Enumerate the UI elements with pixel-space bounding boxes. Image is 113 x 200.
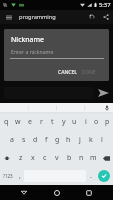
staticText: q [4, 117, 9, 127]
staticText: programming [19, 13, 56, 21]
staticText: l [101, 135, 103, 145]
button[interactable]: ?123 [0, 167, 15, 185]
button[interactable]: y [58, 113, 69, 131]
staticText: . [90, 171, 92, 181]
button[interactable]: v [51, 149, 63, 167]
button[interactable]: Share [98, 10, 113, 24]
staticText: CANCEL [58, 69, 77, 76]
button[interactable]: e [24, 113, 36, 131]
button[interactable]: Shift [0, 149, 14, 167]
button[interactable]: Home [48, 185, 66, 200]
button[interactable]: o [91, 113, 102, 131]
button[interactable]: DONE [81, 66, 100, 79]
staticText: o [94, 117, 99, 127]
button[interactable]: Back [15, 185, 33, 200]
staticText: e [28, 117, 32, 127]
button[interactable]: a [6, 131, 18, 149]
staticText: t [51, 117, 54, 127]
button[interactable]: Open navigation menu [0, 10, 17, 24]
staticText: f [45, 135, 48, 145]
button[interactable]: z [14, 149, 27, 167]
staticText: n [79, 153, 84, 163]
staticText: w [15, 117, 21, 127]
staticText: y [62, 117, 66, 127]
button[interactable]: t [47, 113, 58, 131]
button[interactable]: k [85, 131, 96, 149]
button[interactable]: r [36, 113, 47, 131]
staticText: , [19, 171, 21, 181]
button[interactable]: Recent apps [80, 185, 98, 200]
staticText: v [55, 153, 59, 163]
staticText: k [89, 135, 93, 145]
button[interactable]: f [41, 131, 52, 149]
button[interactable]: j [74, 131, 85, 149]
button[interactable]: Backspace [99, 149, 113, 167]
button[interactable]: l [96, 131, 107, 149]
button[interactable]: c [39, 149, 51, 167]
staticText: u [72, 117, 77, 127]
staticText: ?123 [3, 173, 13, 179]
button[interactable]: q [0, 113, 12, 131]
button[interactable]: , [15, 167, 24, 185]
staticText: a [10, 135, 14, 145]
staticText: g [55, 135, 60, 145]
button[interactable]: . [86, 167, 95, 185]
staticText: j [79, 135, 81, 145]
staticText: z [19, 153, 23, 163]
staticText: r [40, 117, 43, 127]
button[interactable]: i [80, 113, 91, 131]
button[interactable]: Voice input [101, 103, 113, 113]
staticText: m [90, 153, 97, 163]
staticText: d [33, 135, 38, 145]
button[interactable]: m [87, 149, 99, 167]
button[interactable]: Send [93, 85, 113, 101]
button[interactable]: s [18, 131, 30, 149]
button[interactable]: b [63, 149, 75, 167]
button[interactable]: w [12, 113, 24, 131]
button[interactable]: Refresh [85, 10, 98, 24]
staticText: i [85, 117, 87, 127]
staticText: Enter a nickname [11, 48, 54, 55]
staticText: h [66, 135, 71, 145]
staticText: x [31, 153, 35, 163]
staticText: c [43, 153, 47, 163]
button[interactable]: Enter [98, 170, 110, 182]
button[interactable]: n [75, 149, 87, 167]
staticText: DONE [82, 69, 96, 76]
button[interactable]: h [63, 131, 74, 149]
staticText: p [105, 117, 110, 127]
button[interactable]: CANCEL [54, 66, 81, 79]
button[interactable]: x [27, 149, 39, 167]
staticText: % [3, 2, 8, 9]
button[interactable]: d [30, 131, 41, 149]
button[interactable]: p [102, 113, 113, 131]
staticText: Nickname [11, 35, 44, 45]
staticText: s [22, 135, 26, 145]
staticText: 5:37 [99, 1, 111, 9]
staticText: b [67, 153, 72, 163]
button[interactable]: g [52, 131, 63, 149]
button[interactable]: u [69, 113, 80, 131]
